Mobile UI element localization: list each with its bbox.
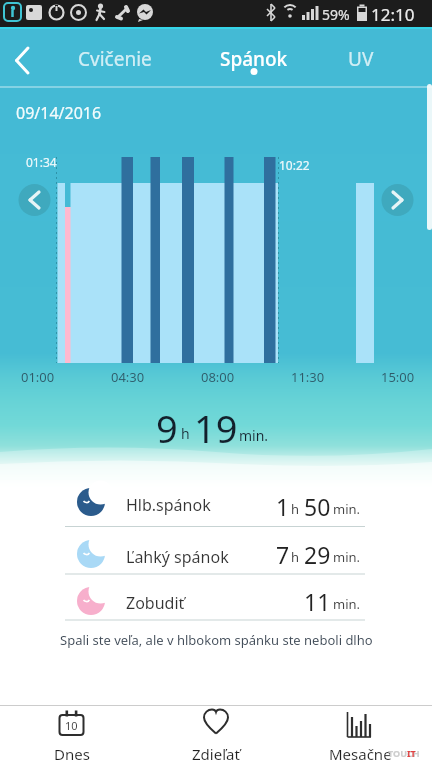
button[interactable] (144, 706, 288, 768)
button[interactable] (378, 182, 416, 220)
staticText: 12:10 (371, 3, 415, 26)
button[interactable] (210, 38, 298, 78)
staticText: Dnes (54, 744, 90, 764)
staticText: 04:30 (111, 368, 145, 386)
staticText: 59% (322, 5, 350, 24)
button[interactable] (60, 528, 365, 574)
staticText: h (291, 500, 300, 518)
staticText: IT (407, 747, 416, 759)
staticText: 11 (304, 586, 331, 617)
staticText: Zdieľať (192, 744, 240, 764)
button[interactable] (288, 706, 432, 768)
button[interactable] (60, 576, 365, 620)
staticText: 11:30 (291, 368, 325, 386)
staticText: Mesačne (329, 744, 392, 764)
staticText: TOUCH (388, 747, 420, 759)
staticText: h (181, 424, 190, 443)
staticText: min. (333, 548, 361, 566)
staticText: 9 (156, 402, 178, 454)
staticText: min. (333, 500, 361, 518)
staticText: 01:00 (21, 368, 55, 386)
staticText: h (291, 548, 300, 566)
button[interactable] (60, 478, 365, 526)
staticText: min. (333, 595, 361, 613)
staticText: Zobudiť (126, 592, 185, 614)
staticText: 19 (194, 402, 238, 454)
button[interactable] (70, 38, 160, 78)
button[interactable] (6, 40, 42, 76)
staticText: 50 (304, 491, 331, 522)
staticText: 7 (276, 539, 290, 570)
staticText: Cvičenie (78, 46, 152, 72)
staticText: 29 (304, 539, 331, 570)
staticText: 08:00 (201, 368, 235, 386)
staticText: Hlb.spánok (126, 494, 211, 516)
staticText: Spánok (220, 46, 288, 72)
staticText: Ľahký spánok (126, 546, 229, 568)
staticText: 10:22 (279, 157, 310, 173)
staticText: min. (239, 426, 269, 445)
staticText: 09/14/2016 (16, 102, 102, 124)
staticText: 1 (276, 491, 290, 522)
staticText: 01:34 (26, 154, 57, 170)
button[interactable] (16, 182, 54, 220)
staticText: 10 (65, 718, 78, 733)
button[interactable] (335, 38, 387, 78)
staticText: UV (348, 46, 374, 72)
staticText: 15:00 (381, 368, 415, 386)
staticText: Spali ste veľa, ale v hlbokom spánku ste… (60, 631, 373, 649)
button[interactable] (0, 706, 144, 768)
